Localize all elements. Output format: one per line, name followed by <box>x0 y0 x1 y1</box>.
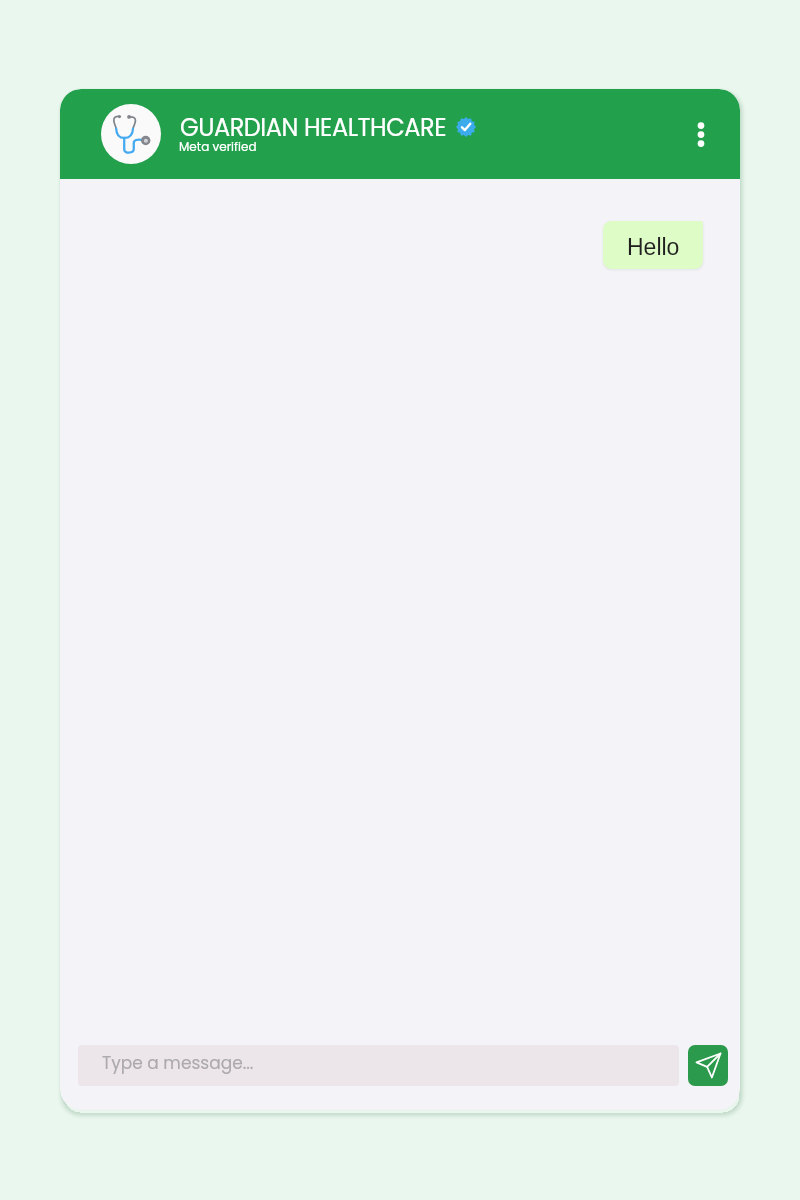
staticText: Type a message... <box>102 1051 254 1075</box>
button[interactable]: GUARDIAN HEALTHCARE <box>90 95 580 173</box>
staticText: Hello <box>627 234 680 260</box>
button[interactable]: Hello <box>603 221 703 269</box>
button[interactable]: Type a message... <box>78 1045 679 1086</box>
staticText: GUARDIAN HEALTHCARE <box>180 111 447 145</box>
button[interactable]: More options <box>679 113 723 157</box>
button[interactable]: Send <box>688 1045 728 1086</box>
staticText: Meta verified <box>179 138 257 155</box>
